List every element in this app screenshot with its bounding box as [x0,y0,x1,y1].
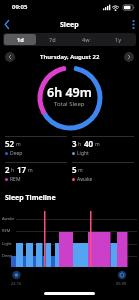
button[interactable]: 4w [69,34,102,45]
button[interactable] [126,16,139,32]
staticText: h [78,141,82,148]
button[interactable] [124,52,134,62]
button[interactable]: 52 [5,136,67,160]
staticText: Sleep Timeline [5,193,56,203]
button[interactable]: 1y [102,34,135,45]
staticText: 1y [115,36,122,43]
staticText: Deep [2,253,12,258]
staticText: Thursday, August 22 [40,53,100,61]
staticText: h [11,167,15,174]
button[interactable]: 2 [5,162,67,186]
staticText: m [78,167,83,174]
button[interactable] [5,52,15,62]
staticText: REM [10,176,21,183]
button[interactable]: 1d [4,34,36,45]
button[interactable] [0,16,20,32]
staticText: 17 [17,164,27,175]
staticText: 09:05 [12,3,28,11]
staticText: Sleep [60,20,79,30]
button[interactable]: 3 [72,136,134,160]
staticText: m [95,141,100,148]
staticText: Awake [77,176,93,183]
button[interactable]: 5 [72,162,134,186]
button[interactable]: 7d [36,34,69,45]
staticText: 40 [84,138,94,149]
staticText: REM [2,228,11,233]
staticText: Deep [10,150,23,157]
staticText: m [28,167,33,174]
staticText: 6h 49m [47,84,92,101]
staticText: Awake [2,216,15,221]
staticText: 7d [49,36,56,43]
staticText: 05:09 [116,281,127,286]
staticText: 22:15 [11,281,22,286]
staticText: 1d [17,36,24,43]
staticText: Total Sleep [54,100,85,108]
staticText: m [16,141,21,148]
staticText: 5 [72,164,77,175]
staticText: Light [2,241,12,246]
staticText: 3 [72,138,77,149]
staticText: Light [77,150,89,157]
staticText: 52 [5,138,15,149]
staticText: 2 [5,164,10,175]
staticText: 4w [82,36,90,43]
